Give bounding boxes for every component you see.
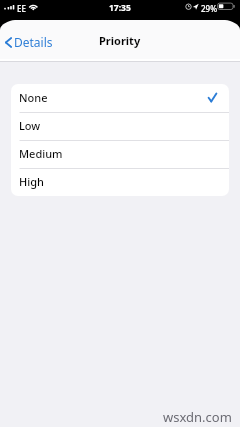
staticText: 17:35 — [109, 2, 131, 14]
button[interactable]: High — [11, 168, 229, 196]
staticText: EE — [17, 3, 26, 14]
staticText: Details — [14, 34, 53, 50]
button[interactable]: Details — [0, 29, 59, 55]
staticText: High — [19, 174, 44, 189]
button[interactable]: None — [11, 84, 229, 112]
button[interactable]: Medium — [11, 140, 229, 168]
staticText: 29% — [201, 3, 217, 14]
staticText: Medium — [19, 146, 63, 161]
other: Selected — [208, 93, 217, 102]
staticText: Low — [19, 118, 41, 133]
staticText: None — [19, 90, 48, 105]
staticText: wsxdn.com — [163, 408, 232, 426]
button[interactable]: Low — [11, 112, 229, 140]
staticText: Priority — [99, 33, 141, 48]
